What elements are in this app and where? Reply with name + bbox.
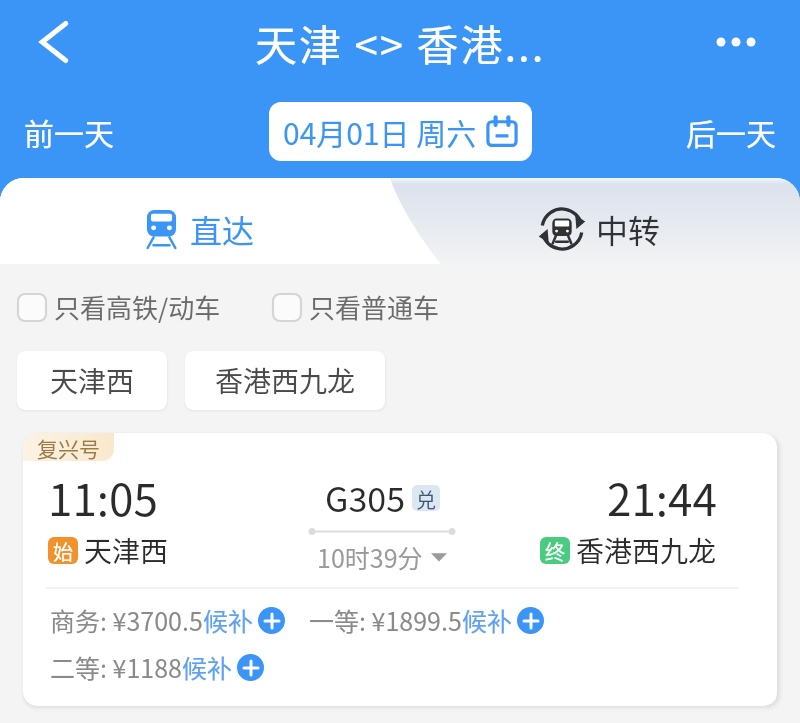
staticText: 前一天 bbox=[24, 110, 114, 153]
button[interactable]: 复兴号 bbox=[23, 433, 777, 706]
staticText: 11:05 bbox=[48, 465, 158, 529]
button[interactable]: 前一天 bbox=[0, 98, 138, 165]
staticText: 21:44 bbox=[607, 465, 717, 529]
staticText: 一等: ¥1899.5 bbox=[309, 602, 462, 638]
staticText: 始 bbox=[53, 537, 73, 564]
staticText: 04月01日 周六 bbox=[283, 110, 477, 153]
staticText: 商务: ¥3700.5 bbox=[50, 602, 203, 638]
staticText: 兑 bbox=[416, 485, 436, 511]
staticText: 候补 bbox=[462, 602, 513, 638]
button[interactable]: 天津西 bbox=[17, 351, 167, 410]
staticText: 天津西 bbox=[50, 360, 135, 401]
staticText: 天津 <> 香港... bbox=[255, 12, 546, 73]
staticText: 只看高铁/动车 bbox=[54, 288, 221, 326]
button[interactable]: More options bbox=[706, 12, 766, 72]
button[interactable]: Add 一等 ticket bbox=[517, 607, 544, 634]
staticText: 天津西 bbox=[84, 530, 169, 571]
staticText: 直达 bbox=[190, 206, 255, 252]
button[interactable]: Add 二等 ticket bbox=[237, 654, 264, 681]
staticText: 二等: ¥1188 bbox=[50, 649, 182, 685]
button[interactable]: 后一天 bbox=[662, 98, 800, 165]
button[interactable]: 香港西九龙 bbox=[185, 351, 385, 410]
button[interactable]: 只看普通车 bbox=[273, 282, 440, 332]
button[interactable]: 04月01日 周六 bbox=[269, 102, 532, 161]
staticText: 香港西九龙 bbox=[576, 530, 717, 571]
staticText: 后一天 bbox=[686, 110, 776, 153]
staticText: 候补 bbox=[203, 602, 254, 638]
staticText: 只看普通车 bbox=[309, 288, 440, 326]
staticText: 候补 bbox=[182, 649, 233, 685]
staticText: 终 bbox=[545, 537, 565, 564]
button[interactable]: 中转 bbox=[400, 178, 800, 264]
staticText: G305 bbox=[325, 473, 406, 522]
button[interactable]: 直达 bbox=[0, 178, 400, 264]
staticText: 复兴号 bbox=[37, 433, 100, 461]
button[interactable]: Add 商务 ticket bbox=[258, 607, 285, 634]
button[interactable]: 只看高铁/动车 bbox=[18, 282, 221, 332]
staticText: 中转 bbox=[596, 206, 661, 252]
staticText: 10时39分 bbox=[317, 539, 423, 575]
staticText: 香港西九龙 bbox=[215, 360, 356, 401]
button[interactable]: Back bbox=[26, 14, 82, 70]
